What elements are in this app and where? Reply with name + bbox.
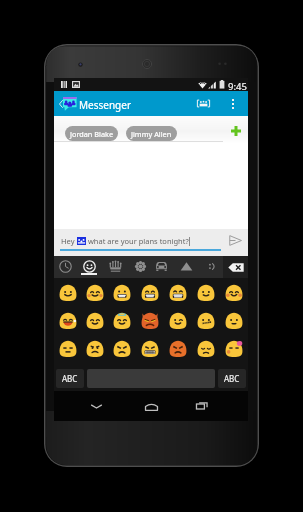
button[interactable]: Jimmy Allen (126, 126, 177, 141)
button[interactable]: tri (174, 256, 198, 278)
button[interactable]: Home (128, 391, 174, 421)
button[interactable]: Emoji 15 (54, 335, 81, 363)
staticText: Hey (61, 236, 77, 246)
button[interactable]: Emoji 19 (164, 335, 192, 363)
button[interactable]: Emoji 17 (108, 335, 136, 363)
button[interactable]: Emoji 14 (220, 307, 248, 335)
button[interactable]: Jordan Blake (65, 126, 118, 141)
button[interactable]: Add contact (230, 125, 241, 136)
button[interactable]: Emoji 12 (164, 307, 192, 335)
staticText: 9:45 (228, 80, 247, 93)
staticText: Messenger (79, 98, 132, 112)
button[interactable]: Emoji 21 (220, 335, 248, 363)
button[interactable]: Emoji 1 (54, 279, 81, 307)
button[interactable]: Emoji 16 (81, 335, 108, 363)
button[interactable]: Emoji 20 (192, 335, 220, 363)
button[interactable]: Emoji 13 (192, 307, 220, 335)
button[interactable]: Emoji 18 (136, 335, 164, 363)
button[interactable]: Recent apps (179, 391, 225, 421)
staticText: Jordan Blake (70, 129, 113, 139)
button[interactable]: car (149, 256, 173, 278)
button[interactable]: Navigate up (55, 91, 66, 116)
button[interactable]: Emoji 3 (108, 279, 136, 307)
button[interactable]: Emoji 7 (220, 279, 248, 307)
staticText: ABC (62, 373, 78, 384)
button[interactable]: Add participants (193, 91, 214, 116)
button[interactable]: Emoji 8 (54, 307, 81, 335)
button[interactable]: Emoji 4 (136, 279, 164, 307)
button[interactable]: emoticon (199, 256, 223, 278)
button[interactable]: Emoji 10 (108, 307, 136, 335)
staticText: what are your plans tonight? (86, 236, 189, 246)
button[interactable]: Hide keyboard (73, 391, 119, 421)
button[interactable]: clock (53, 256, 77, 278)
button[interactable]: ABC (218, 369, 246, 388)
button[interactable]: Send (224, 232, 246, 249)
button[interactable]: smile (77, 256, 101, 278)
button[interactable]: Emoji 11 (136, 307, 164, 335)
button[interactable]: crown (103, 256, 127, 278)
button[interactable]: flower (128, 256, 152, 278)
button[interactable]: More options (225, 91, 241, 116)
button[interactable]: Delete (223, 256, 248, 278)
button[interactable]: Emoji 9 (81, 307, 108, 335)
staticText: ABC (224, 373, 240, 384)
button[interactable]: Emoji 5 (164, 279, 192, 307)
button[interactable]: Emoji 2 (81, 279, 108, 307)
button[interactable]: Emoji 6 (192, 279, 220, 307)
staticText: Jimmy Allen (131, 129, 172, 139)
button[interactable]: ABC (56, 369, 84, 388)
